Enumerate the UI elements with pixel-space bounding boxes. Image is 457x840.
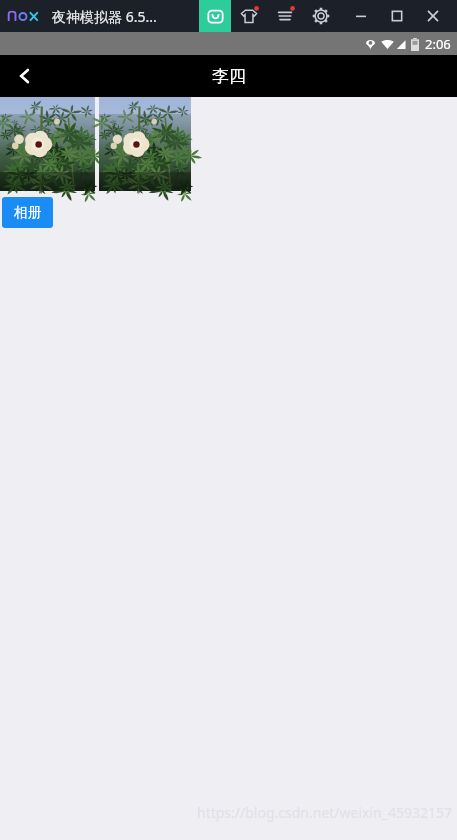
staticText: 2:06: [425, 35, 451, 53]
button[interactable]: Settings: [303, 0, 339, 32]
button[interactable]: 相册: [2, 197, 53, 228]
staticText: https://blog.csdn.net/weixin_45932157: [197, 803, 453, 822]
button[interactable]: Menu: [267, 0, 303, 32]
button[interactable]: Maximize: [379, 0, 415, 32]
button[interactable]: Minimize: [343, 0, 379, 32]
staticText: 夜神模拟器 6.5...: [52, 7, 157, 26]
button[interactable]: Back: [0, 55, 50, 97]
button[interactable]: Close: [415, 0, 451, 32]
staticText: 李四: [212, 66, 246, 87]
staticText: 相册: [14, 204, 42, 222]
button[interactable]: App store: [199, 0, 231, 32]
button[interactable]: Photo: [0, 97, 95, 191]
button[interactable]: Photo: [99, 97, 191, 191]
button[interactable]: Themes: [231, 0, 267, 32]
